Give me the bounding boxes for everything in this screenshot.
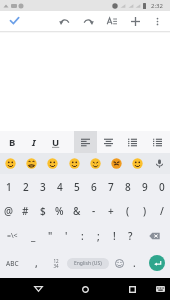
button[interactable]: 1 bbox=[0, 174, 17, 199]
button[interactable]: Undo bbox=[55, 12, 73, 30]
staticText: + bbox=[108, 204, 114, 218]
button[interactable]: + bbox=[102, 199, 119, 223]
staticText: . bbox=[133, 256, 136, 270]
staticText: 2:32 bbox=[151, 2, 163, 10]
button[interactable]: & bbox=[68, 199, 85, 223]
button[interactable]: , bbox=[25, 248, 47, 278]
button[interactable]: Numbers bbox=[47, 248, 64, 278]
button[interactable]: =\< bbox=[0, 223, 25, 248]
button[interactable]: ! bbox=[106, 223, 122, 248]
button[interactable]: Emoji suggestion bbox=[21, 153, 41, 174]
button[interactable]: More options bbox=[148, 12, 166, 30]
button[interactable]: 8 bbox=[119, 174, 136, 199]
button[interactable]: Back bbox=[27, 278, 49, 300]
button[interactable]: ; bbox=[90, 223, 106, 248]
button[interactable]: ( bbox=[119, 199, 136, 223]
staticText: U bbox=[52, 136, 60, 149]
staticText: 6 bbox=[91, 180, 97, 194]
staticText: ) bbox=[143, 204, 147, 218]
button[interactable]: % bbox=[51, 199, 68, 223]
button[interactable]: Add bbox=[126, 12, 144, 30]
button[interactable]: ' bbox=[58, 223, 74, 248]
button[interactable]: # bbox=[17, 199, 34, 223]
staticText: 5 bbox=[74, 180, 80, 194]
button[interactable]: Recent apps bbox=[121, 278, 143, 300]
button[interactable]: 6 bbox=[85, 174, 102, 199]
button[interactable]: Voice input bbox=[149, 153, 169, 174]
button[interactable]: Redo bbox=[80, 12, 98, 30]
button[interactable]: - bbox=[85, 199, 102, 223]
button[interactable]: Emoji suggestion bbox=[127, 153, 147, 174]
button[interactable]: I bbox=[23, 131, 45, 153]
button[interactable]: Switch keyboard bbox=[149, 278, 170, 300]
button[interactable]: Emoji suggestion bbox=[42, 153, 62, 174]
staticText: # bbox=[22, 204, 29, 218]
button[interactable]: Home bbox=[74, 278, 96, 300]
button[interactable]: 9 bbox=[136, 174, 153, 199]
staticText: " bbox=[48, 229, 53, 243]
staticText: B bbox=[9, 136, 16, 149]
button[interactable]: 4 bbox=[51, 174, 68, 199]
button[interactable]: 3 bbox=[34, 174, 51, 199]
staticText: : bbox=[81, 229, 84, 243]
button[interactable]: Text formatting bbox=[103, 12, 121, 30]
staticText: @ bbox=[4, 204, 13, 218]
staticText: - bbox=[92, 204, 96, 218]
staticText: ? bbox=[128, 229, 133, 243]
staticText: 4 bbox=[57, 180, 63, 194]
button[interactable]: Space bbox=[67, 258, 109, 269]
button[interactable]: Backspace bbox=[138, 223, 170, 248]
button[interactable]: 7 bbox=[102, 174, 119, 199]
staticText: ABC bbox=[6, 259, 19, 268]
button[interactable]: @ bbox=[0, 199, 17, 223]
button[interactable]: 2 bbox=[17, 174, 34, 199]
staticText: _ bbox=[31, 229, 36, 243]
button[interactable]: Emoji suggestion bbox=[64, 153, 84, 174]
button[interactable]: Bulleted list bbox=[121, 131, 144, 153]
staticText: 0 bbox=[159, 180, 165, 194]
staticText: 1 bbox=[6, 180, 12, 194]
button[interactable]: $ bbox=[34, 199, 51, 223]
staticText: 8 bbox=[125, 180, 131, 194]
staticText: =\< bbox=[7, 231, 18, 241]
button[interactable]: Done bbox=[5, 11, 24, 30]
staticText: % bbox=[55, 204, 64, 218]
staticText: / bbox=[160, 204, 164, 218]
button[interactable]: Align center bbox=[97, 131, 120, 153]
staticText: ' bbox=[65, 229, 68, 243]
staticText: ! bbox=[113, 229, 116, 243]
staticText: 9 bbox=[142, 180, 148, 194]
staticText: 7 bbox=[108, 180, 114, 194]
staticText: English (US) bbox=[74, 260, 102, 267]
button[interactable]: Enter bbox=[149, 255, 165, 271]
button[interactable]: / bbox=[153, 199, 170, 223]
button[interactable]: Numbered list bbox=[146, 131, 169, 153]
button[interactable]: 0 bbox=[153, 174, 170, 199]
button[interactable]: Emoji suggestion bbox=[106, 153, 126, 174]
button[interactable]: U bbox=[45, 131, 67, 153]
staticText: 2 bbox=[23, 180, 29, 194]
button[interactable]: B bbox=[1, 131, 23, 153]
staticText: ; bbox=[97, 229, 100, 243]
staticText: $ bbox=[40, 204, 46, 218]
button[interactable]: ABC bbox=[0, 248, 25, 278]
button[interactable]: _ bbox=[25, 223, 42, 248]
button[interactable]: ? bbox=[122, 223, 138, 248]
button[interactable]: Emoji suggestion bbox=[85, 153, 105, 174]
button[interactable]: Emoji bbox=[112, 248, 126, 278]
button[interactable]: " bbox=[42, 223, 58, 248]
button[interactable]: . bbox=[126, 248, 143, 278]
button[interactable]: : bbox=[74, 223, 90, 248]
button[interactable]: ) bbox=[136, 199, 153, 223]
staticText: 3 bbox=[40, 180, 46, 194]
button[interactable]: Align left bbox=[74, 131, 97, 153]
staticText: & bbox=[73, 204, 81, 218]
staticText: , bbox=[35, 256, 38, 270]
staticText: I bbox=[32, 136, 36, 149]
button[interactable]: Emoji suggestion bbox=[0, 153, 20, 174]
button[interactable]: 5 bbox=[68, 174, 85, 199]
staticText: ( bbox=[126, 204, 130, 218]
staticText: 12 34 bbox=[53, 258, 59, 269]
